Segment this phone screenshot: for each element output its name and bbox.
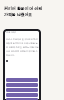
staticText: 서비스 이용약관 및 개인정보 처리방침에 동의하시면 아래 버튼을 눌러 진행… [6, 38, 39, 57]
staticText: 이용 안내 [6, 31, 16, 34]
staticText: 커리어 활용이 더 쉬워 가격을 낮췄어요 [4, 6, 43, 18]
button[interactable] [6, 88, 38, 92]
button[interactable] [6, 93, 38, 97]
button[interactable] [6, 83, 38, 87]
button[interactable] [6, 98, 38, 100]
button[interactable] [6, 78, 38, 82]
